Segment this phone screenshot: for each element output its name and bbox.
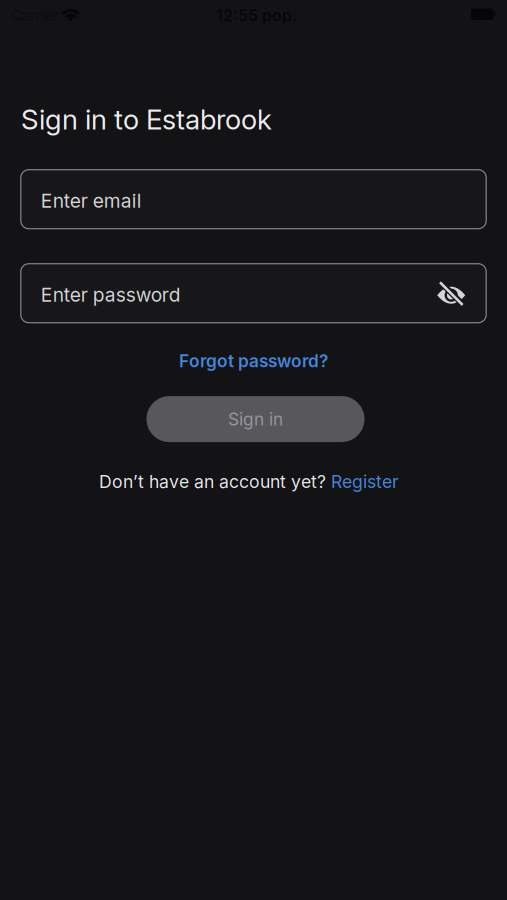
staticText: Register [331,471,399,492]
staticText: Forgot password? [179,351,328,371]
staticText: Enter password [41,283,181,306]
button[interactable]: Forgot password? [179,351,328,371]
staticText: Don’t have an account yet? [99,471,331,492]
staticText: Enter email [41,189,142,212]
button[interactable]: Show password [438,284,466,303]
button[interactable]: Sign in [146,396,364,442]
button[interactable]: Enter password [21,264,486,323]
staticText: Carrier [11,7,58,24]
staticText: Sign in to Estabrook [21,103,272,136]
button[interactable]: Enter email [21,170,486,229]
staticText: 12:55 pop. [216,6,297,25]
staticText: Sign in [228,409,283,429]
button[interactable]: Don’t have an account yet? [99,471,399,492]
